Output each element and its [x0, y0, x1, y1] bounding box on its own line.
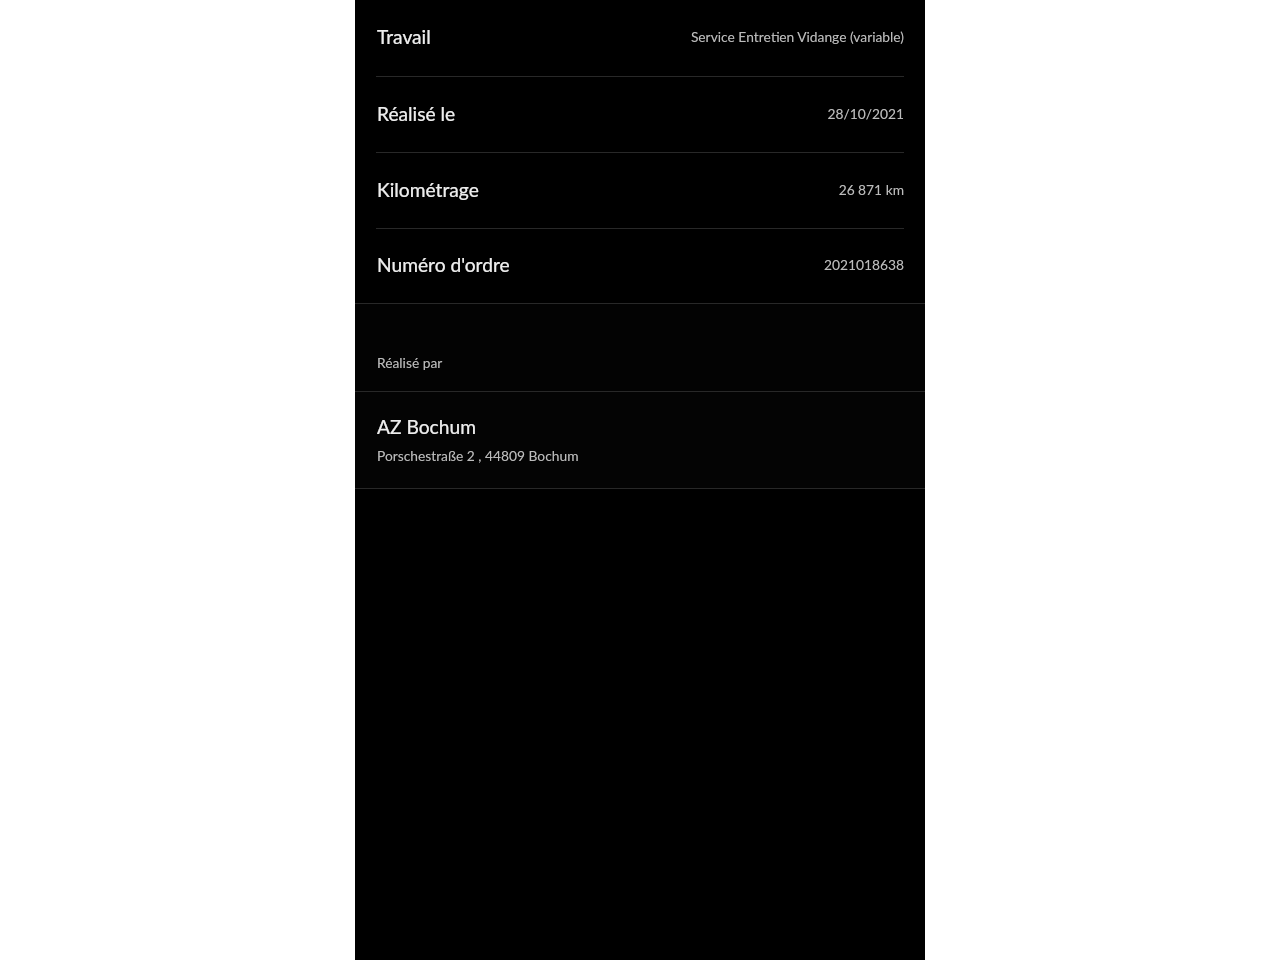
staticText: 2021018638	[823, 256, 904, 273]
staticText: Kilométrage	[377, 178, 479, 201]
button[interactable]: Numéro d'ordre	[355, 229, 925, 304]
button[interactable]: Kilométrage	[355, 153, 925, 229]
staticText: Service Entretien Vidange (variable)	[690, 28, 904, 45]
staticText: AZ Bochum	[377, 415, 476, 438]
staticText: 26 871 km	[838, 181, 904, 198]
staticText: Travail	[377, 25, 431, 48]
button[interactable]: AZ Bochum	[355, 392, 925, 489]
staticText: 28/10/2021	[827, 105, 904, 122]
staticText: Porschestraße 2 , 44809 Bochum	[377, 447, 579, 464]
staticText: Réalisé par	[377, 354, 443, 371]
staticText: Numéro d'ordre	[377, 253, 510, 276]
button[interactable]: Travail	[355, 0, 925, 77]
staticText: Réalisé le	[377, 102, 456, 125]
button[interactable]: Réalisé le	[355, 77, 925, 153]
